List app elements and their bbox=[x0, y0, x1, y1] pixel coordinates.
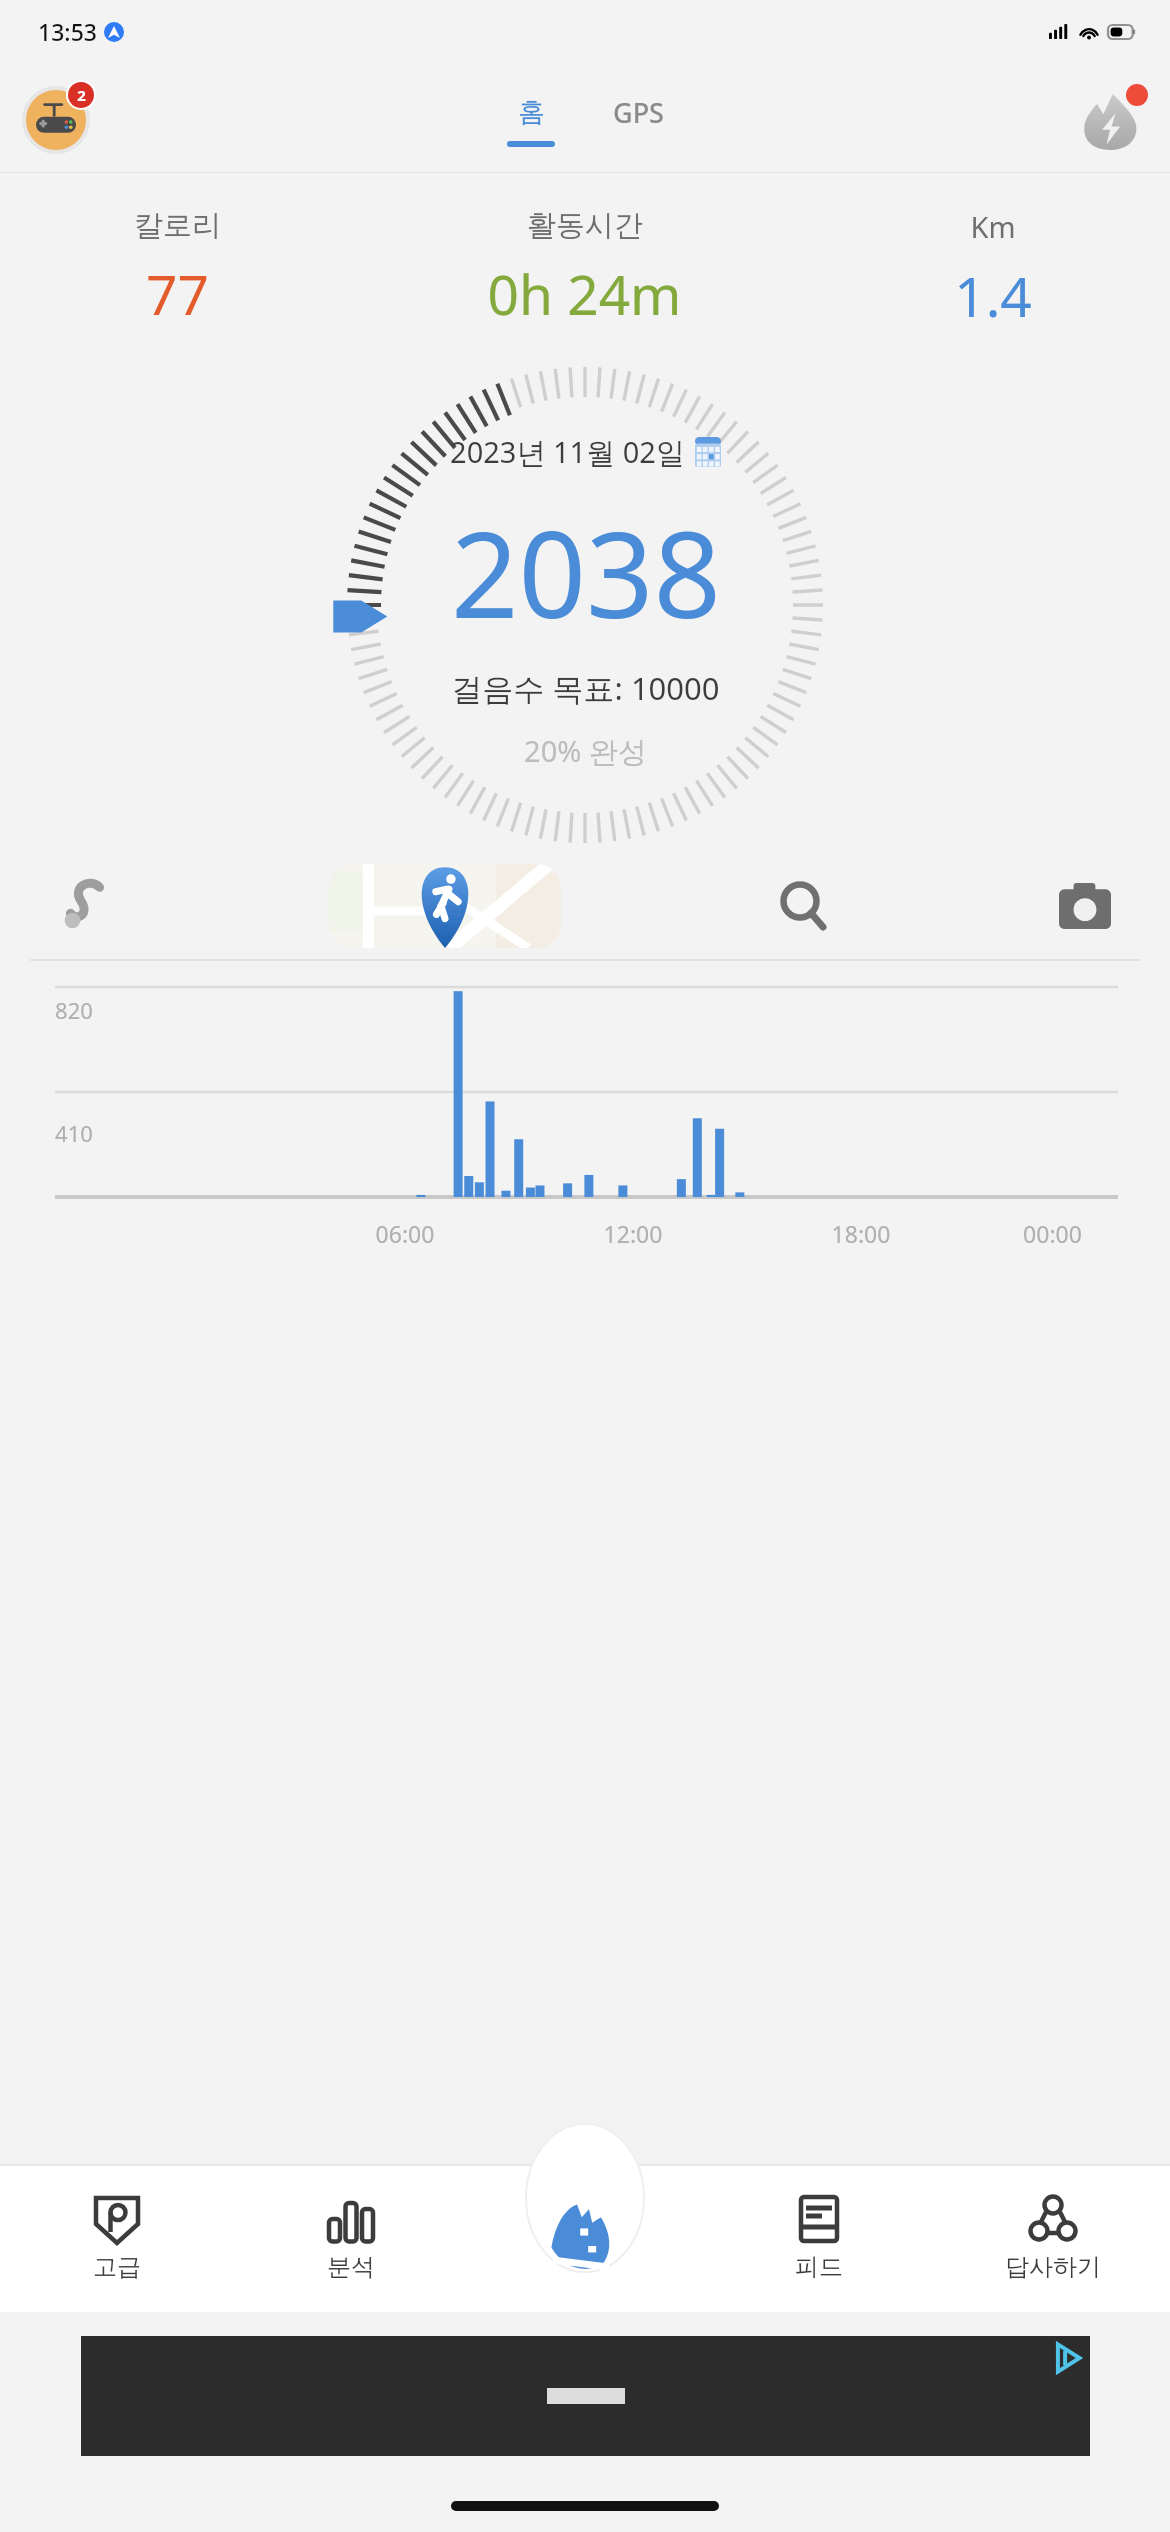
button[interactable]: Search bbox=[767, 869, 841, 943]
button[interactable]: 칼로리 bbox=[0, 207, 354, 331]
staticText: 분석 bbox=[327, 2252, 375, 2282]
button[interactable]: 피드 bbox=[702, 2164, 936, 2312]
staticText: 2 bbox=[77, 85, 86, 105]
button[interactable]: 고급 bbox=[0, 2164, 234, 2312]
staticText: 820 bbox=[55, 995, 93, 1025]
button[interactable]: Profile bbox=[22, 80, 96, 154]
staticText: 2038 bbox=[451, 492, 721, 653]
staticText: 답사하기 bbox=[1005, 2252, 1101, 2282]
staticText: 20% 완성 bbox=[524, 731, 647, 771]
staticText: 홈 bbox=[518, 95, 545, 129]
staticText: 0h 24m bbox=[487, 256, 682, 331]
staticText: GPS bbox=[613, 94, 664, 131]
staticText: Km bbox=[970, 207, 1016, 246]
staticText: 활동시간 bbox=[527, 207, 643, 244]
button[interactable]: 분석 bbox=[234, 2164, 468, 2312]
button[interactable]: 2023년 11월 02일 bbox=[450, 432, 721, 472]
staticText: 18:00 bbox=[747, 1218, 975, 1249]
button[interactable]: Advertisement bbox=[81, 2336, 1090, 2456]
staticText: 00:00 bbox=[975, 1218, 1130, 1249]
button[interactable]: GPS bbox=[599, 103, 678, 140]
staticText: 칼로리 bbox=[134, 207, 221, 244]
staticText: 피드 bbox=[795, 2252, 843, 2282]
staticText: 77 bbox=[146, 256, 209, 331]
button[interactable]: 답사하기 bbox=[936, 2164, 1170, 2312]
button[interactable]: 활동시간 bbox=[354, 207, 815, 331]
button[interactable]: Map bbox=[329, 864, 561, 948]
staticText: 12:00 bbox=[519, 1218, 747, 1249]
staticText: 고급 bbox=[93, 2252, 141, 2282]
staticText: 06:00 bbox=[291, 1218, 519, 1249]
button[interactable]: Camera bbox=[1048, 869, 1122, 943]
button[interactable]: 홈 bbox=[493, 95, 569, 147]
button[interactable]: Km bbox=[815, 207, 1170, 333]
staticText: 걸음수 목표: 10000 bbox=[451, 667, 720, 709]
staticText: 2023년 11월 02일 bbox=[450, 432, 685, 472]
button[interactable]: Route bbox=[48, 869, 122, 943]
staticText: 13:53 bbox=[38, 16, 97, 47]
staticText: 410 bbox=[55, 1118, 93, 1148]
staticText: 1.4 bbox=[954, 258, 1032, 333]
button[interactable]: Energy bbox=[1082, 84, 1148, 150]
button[interactable]: Start run bbox=[468, 2164, 702, 2312]
button[interactable]: Start run bbox=[468, 2164, 702, 2312]
